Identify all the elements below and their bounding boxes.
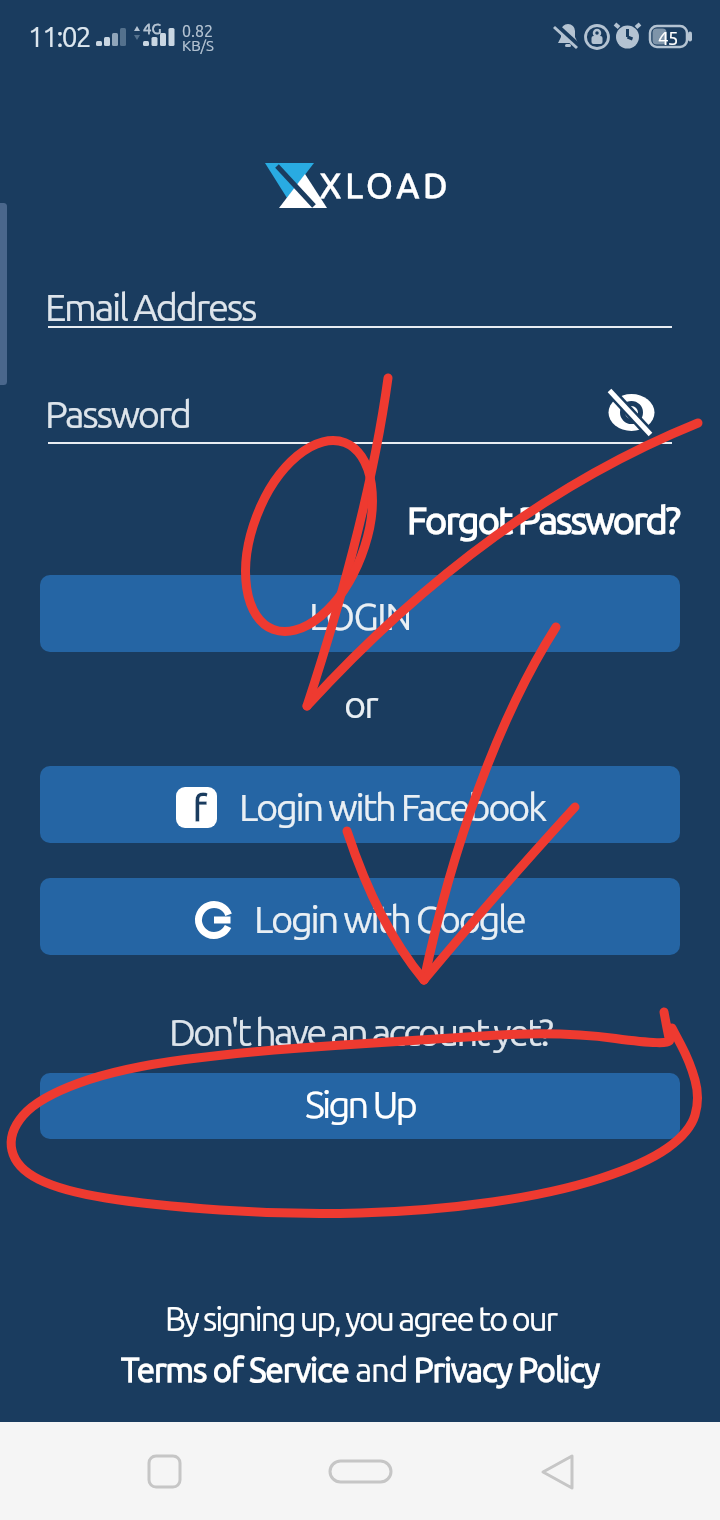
button[interactable] [48, 384, 598, 446]
staticText: 11:02 [28, 21, 91, 52]
staticText: KB/S [182, 37, 214, 54]
staticText: Terms of Service and Privacy Policy [121, 1351, 600, 1388]
staticText: LOGIN [309, 595, 411, 638]
staticText: Login with Facebook [239, 786, 545, 829]
staticText: Email Address [45, 286, 256, 329]
button[interactable] [525, 1440, 595, 1504]
button[interactable] [130, 1348, 600, 1390]
staticText: f [193, 787, 207, 827]
staticText: By signing up, you agree to our [165, 1300, 556, 1337]
staticText: Don't have an account yet? [169, 1011, 552, 1054]
button[interactable]: Sign Up [40, 1073, 680, 1139]
button[interactable]: f [40, 766, 680, 843]
staticText: Login with Google [254, 898, 525, 941]
staticText: 45 [658, 27, 678, 48]
button[interactable] [325, 1440, 395, 1504]
staticText: 4G [143, 20, 162, 37]
button[interactable] [48, 272, 672, 330]
staticText: or [344, 683, 377, 726]
button[interactable]: LOGIN [40, 575, 680, 652]
staticText: 0.82 [182, 22, 214, 40]
staticText: Sign Up [305, 1083, 415, 1126]
button[interactable] [600, 384, 672, 446]
button[interactable]: Forgot Password? [407, 499, 679, 542]
staticText: Password [45, 393, 190, 436]
staticText: XLOAD [320, 166, 452, 204]
button[interactable]: Login with Google [40, 878, 680, 955]
button[interactable] [130, 1440, 200, 1504]
